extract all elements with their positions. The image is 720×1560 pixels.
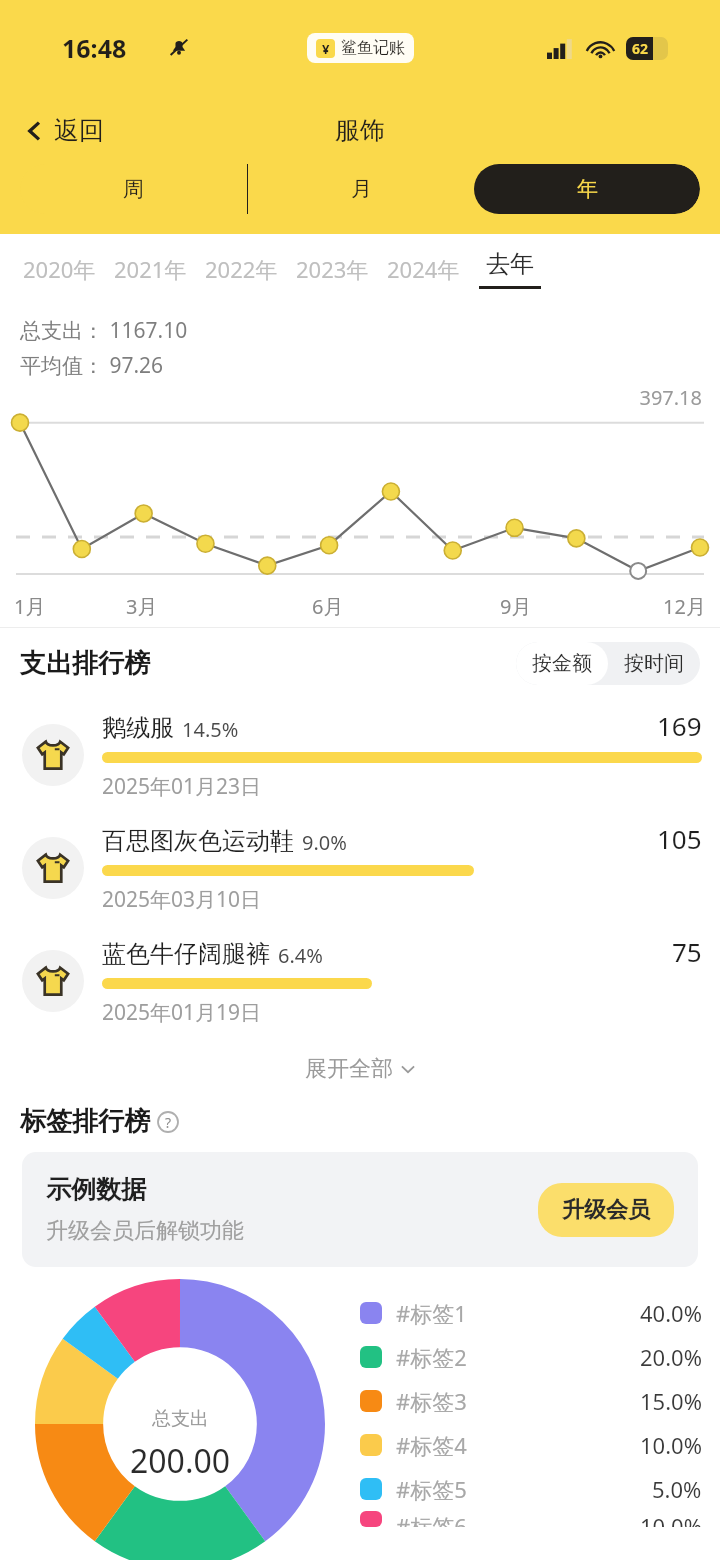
staticText: 鹅绒服 (102, 713, 174, 743)
button[interactable]: 周 (20, 164, 247, 214)
button[interactable]: #标签2 (360, 1335, 702, 1379)
button[interactable]: 年 (474, 164, 700, 214)
staticText: 按金额 (532, 651, 592, 676)
button[interactable]: #标签5 (360, 1467, 702, 1511)
button[interactable]: 帮助 (156, 1110, 180, 1134)
staticText: 蓝色牛仔阔腿裤 (102, 939, 270, 969)
staticText: 40.0% (640, 1298, 702, 1328)
staticText: 月 (351, 176, 372, 202)
button[interactable]: 月 (248, 164, 474, 214)
staticText: 397.18 (0, 384, 702, 411)
staticText: 按时间 (624, 651, 684, 676)
staticText: 1月 (14, 593, 46, 620)
button[interactable]: 按金额 (516, 642, 608, 685)
button[interactable]: 鹅绒服 (0, 698, 720, 811)
staticText: 百思图灰色运动鞋 (102, 826, 294, 856)
staticText: 9.0% (302, 829, 347, 856)
staticText: 去年 (486, 249, 534, 279)
staticText: 2021年 (114, 254, 187, 284)
button[interactable]: 2020年 (14, 246, 105, 292)
button[interactable]: 按时间 (608, 642, 700, 685)
button[interactable]: 2021年 (105, 246, 196, 292)
staticText: 总支出： 1167.10 (20, 316, 188, 345)
staticText: 2025年03月10日 (102, 885, 262, 914)
staticText: ¥ (322, 40, 330, 58)
staticText: #标签3 (396, 1386, 467, 1416)
staticText: 20.0% (640, 1342, 702, 1372)
button[interactable]: #标签3 (360, 1379, 702, 1423)
staticText: 200.00 (130, 1439, 231, 1483)
staticText: ? (165, 1113, 172, 1132)
staticText: 2025年01月19日 (102, 998, 262, 1027)
staticText: 6.4% (278, 942, 323, 969)
staticText: 2024年 (387, 254, 460, 284)
staticText: 周 (123, 176, 144, 202)
staticText: #标签5 (396, 1474, 467, 1504)
button[interactable]: 返回 (0, 109, 118, 152)
staticText: 169 (657, 708, 702, 743)
staticText: 2022年 (205, 254, 278, 284)
button[interactable]: #标签4 (360, 1423, 702, 1467)
staticText: 2023年 (296, 254, 369, 284)
staticText: 升级会员后解锁功能 (46, 1217, 244, 1245)
staticText: 6月 (312, 593, 344, 620)
button[interactable]: 去年 (469, 249, 551, 289)
button[interactable]: 2024年 (378, 246, 469, 292)
staticText: 标签排行榜 (20, 1105, 150, 1138)
staticText: #标签6 (396, 1511, 467, 1527)
staticText: 服饰 (335, 115, 385, 146)
staticText: 5.0% (652, 1474, 702, 1504)
button[interactable]: 蓝色牛仔阔腿裤 (0, 924, 720, 1037)
staticText: 展开全部 (305, 1055, 393, 1083)
button[interactable]: 2022年 (196, 246, 287, 292)
staticText: #标签1 (396, 1298, 467, 1328)
staticText: 示例数据 (46, 1174, 146, 1205)
staticText: 14.5% (182, 716, 239, 743)
button[interactable]: #标签6 (360, 1511, 702, 1527)
staticText: 升级会员 (562, 1196, 650, 1224)
staticText: 10.0% (640, 1511, 702, 1527)
staticText: 平均值： 97.26 (20, 351, 164, 380)
staticText: 16:48 (62, 31, 127, 65)
button[interactable]: 百思图灰色运动鞋 (0, 811, 720, 924)
staticText: 鲨鱼记账 (341, 38, 405, 58)
button[interactable]: 展开全部 (289, 1047, 432, 1091)
staticText: 返回 (54, 115, 104, 146)
staticText: 总支出 (152, 1407, 209, 1431)
staticText: 9月 (500, 593, 532, 620)
staticText: #标签2 (396, 1342, 467, 1372)
staticText: 62 (632, 39, 649, 58)
button[interactable]: #标签1 (360, 1291, 702, 1335)
staticText: 15.0% (640, 1386, 702, 1416)
staticText: 105 (657, 821, 702, 856)
staticText: 75 (672, 934, 702, 969)
staticText: 年 (577, 176, 598, 202)
staticText: 3月 (126, 593, 158, 620)
staticText: 10.0% (640, 1430, 702, 1460)
button[interactable]: 2023年 (287, 246, 378, 292)
staticText: 2025年01月23日 (102, 772, 262, 801)
staticText: #标签4 (396, 1430, 467, 1460)
button[interactable]: 升级会员 (538, 1183, 674, 1237)
staticText: 12月 (663, 593, 706, 620)
staticText: 2020年 (23, 254, 96, 284)
staticText: 支出排行榜 (20, 647, 150, 680)
